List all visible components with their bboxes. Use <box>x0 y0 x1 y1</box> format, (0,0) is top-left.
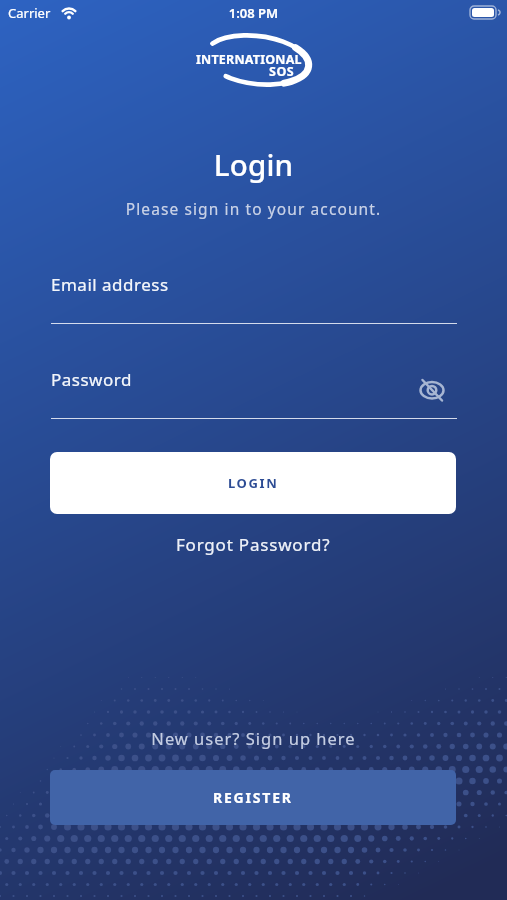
staticText: New user? Sign up here <box>0 727 507 749</box>
staticText: Carrier <box>8 4 51 22</box>
staticText: LOGIN <box>228 474 279 492</box>
staticText: Please sign in to your account. <box>0 198 507 219</box>
button[interactable]: LOGIN <box>50 452 456 514</box>
staticText: Email address <box>51 273 169 296</box>
staticText: Forgot Password? <box>176 533 331 556</box>
button[interactable] <box>413 371 451 409</box>
button[interactable]: Forgot Password? <box>168 531 339 558</box>
staticText: Password <box>51 368 132 391</box>
staticText: INTERNATIONAL <box>196 51 302 68</box>
staticText: SOS <box>269 63 295 80</box>
staticText: Login <box>0 144 507 184</box>
staticText: 1:08 PM <box>0 4 507 22</box>
button[interactable]: REGISTER <box>50 770 456 825</box>
staticText: REGISTER <box>213 788 293 807</box>
